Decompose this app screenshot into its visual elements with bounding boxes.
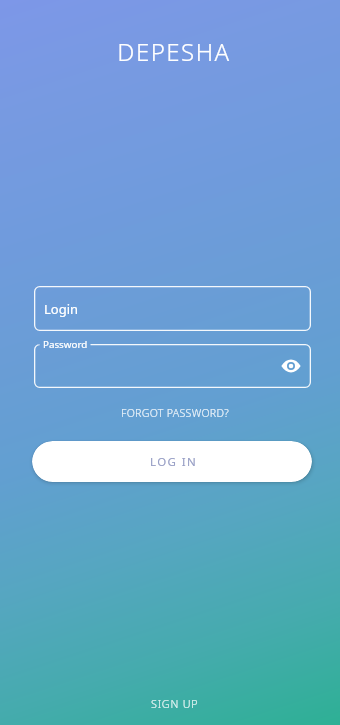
button[interactable]: Show password	[278, 353, 304, 379]
staticText: Password	[43, 338, 88, 351]
button[interactable]: Password	[34, 344, 311, 388]
staticText: Login	[44, 300, 79, 318]
button[interactable]: SIGN UP	[0, 682, 340, 725]
staticText: SIGN UP	[151, 696, 199, 711]
button[interactable]: LOG IN	[32, 441, 312, 482]
button[interactable]: FORGOT PASSWORD?	[5, 402, 340, 424]
button[interactable]: Login	[34, 286, 311, 331]
staticText: FORGOT PASSWORD?	[121, 406, 230, 420]
staticText: LOG IN	[150, 454, 198, 470]
staticText: DEPESHA	[4, 35, 340, 68]
